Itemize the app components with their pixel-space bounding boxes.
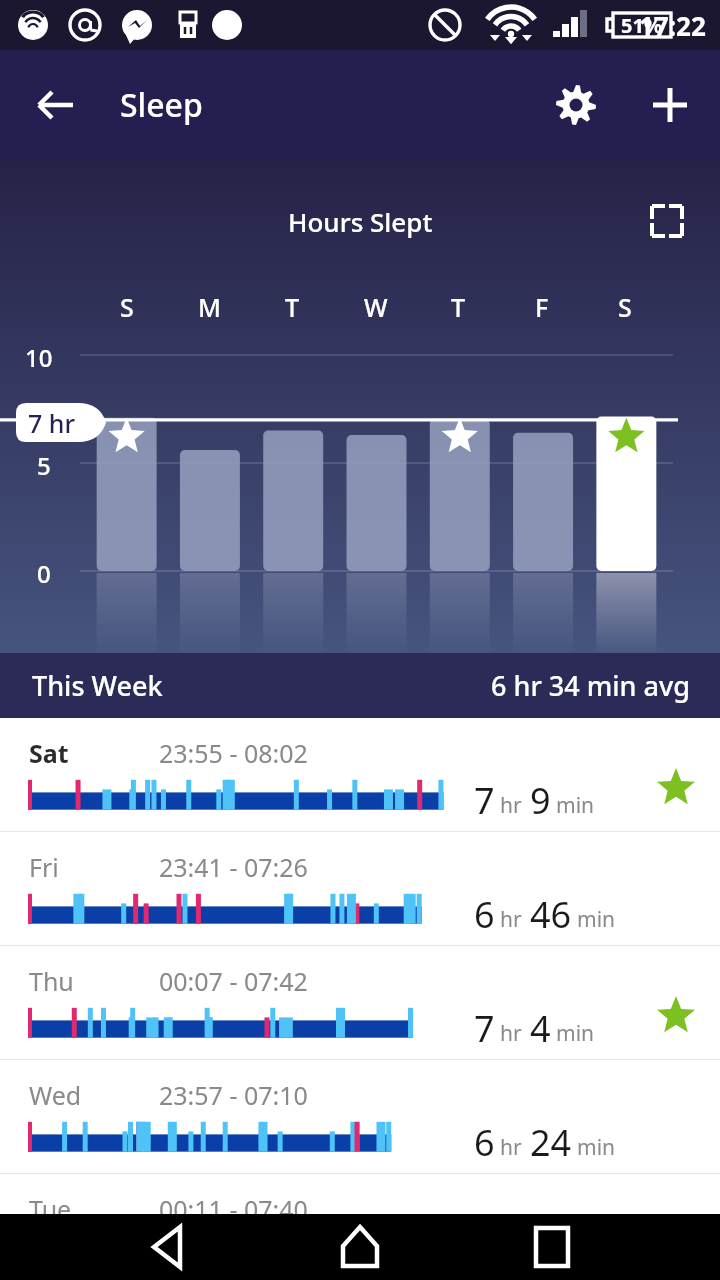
staticText: Sleep [120, 83, 203, 127]
button[interactable]: Settings [548, 77, 604, 133]
button[interactable]: Home [330, 1217, 390, 1277]
button[interactable]: Fullscreen [640, 194, 694, 248]
staticText: T [451, 290, 466, 324]
staticText: 9 [530, 776, 551, 825]
staticText: W [364, 290, 388, 324]
staticText: S [618, 290, 632, 324]
staticText: min [577, 1133, 616, 1162]
staticText: 24 [530, 1118, 572, 1167]
staticText: 23:55 - 08:02 [159, 736, 308, 770]
staticText: hr [500, 791, 522, 820]
button[interactable] [0, 160, 720, 653]
button[interactable]: Add [642, 77, 698, 133]
staticText: 10 [25, 341, 53, 374]
staticText: hr [500, 1019, 522, 1048]
staticText: T [285, 290, 300, 324]
staticText: 6 [474, 890, 495, 939]
staticText: F [535, 290, 549, 324]
staticText: 00:07 - 07:42 [159, 964, 308, 998]
staticText: 6 [474, 1118, 495, 1167]
staticText: 0 [37, 557, 51, 590]
staticText: 23:41 - 07:26 [159, 850, 308, 884]
staticText: hr [500, 1133, 522, 1162]
staticText: 7 [474, 776, 495, 825]
staticText: 51% [621, 12, 662, 39]
staticText: Hours Slept [288, 204, 433, 239]
staticText: Thu [29, 964, 74, 998]
staticText: Wed [29, 1078, 82, 1112]
button[interactable]: Thu [0, 946, 720, 1059]
staticText: 17:22 [639, 8, 706, 43]
staticText: 46 [530, 890, 572, 939]
staticText: 7 hr [28, 406, 76, 440]
button[interactable]: Tue [0, 1174, 720, 1214]
staticText: min [556, 1019, 595, 1048]
staticText: Tue [29, 1192, 72, 1226]
button[interactable]: Sat [0, 718, 720, 831]
staticText: This Week [32, 667, 163, 704]
staticText: Sat [29, 736, 69, 770]
staticText: M [198, 290, 221, 324]
staticText: 23:57 - 07:10 [159, 1078, 308, 1112]
staticText: 00:11 - 07:40 [159, 1192, 308, 1226]
button[interactable]: Fri [0, 832, 720, 945]
button[interactable]: Recents [522, 1217, 582, 1277]
staticText: hr [500, 905, 522, 934]
staticText: 4 [530, 1004, 551, 1053]
staticText: 5 [37, 449, 51, 482]
staticText: Fri [29, 850, 59, 884]
staticText: min [556, 791, 595, 820]
staticText: S [120, 290, 134, 324]
button[interactable]: This Week [0, 653, 720, 718]
staticText: 6 hr 34 min avg [491, 667, 690, 704]
staticText: min [577, 905, 616, 934]
button[interactable]: Back [138, 1217, 198, 1277]
button[interactable]: Wed [0, 1060, 720, 1173]
button[interactable]: Back [28, 77, 84, 133]
staticText: 7 [474, 1004, 495, 1053]
